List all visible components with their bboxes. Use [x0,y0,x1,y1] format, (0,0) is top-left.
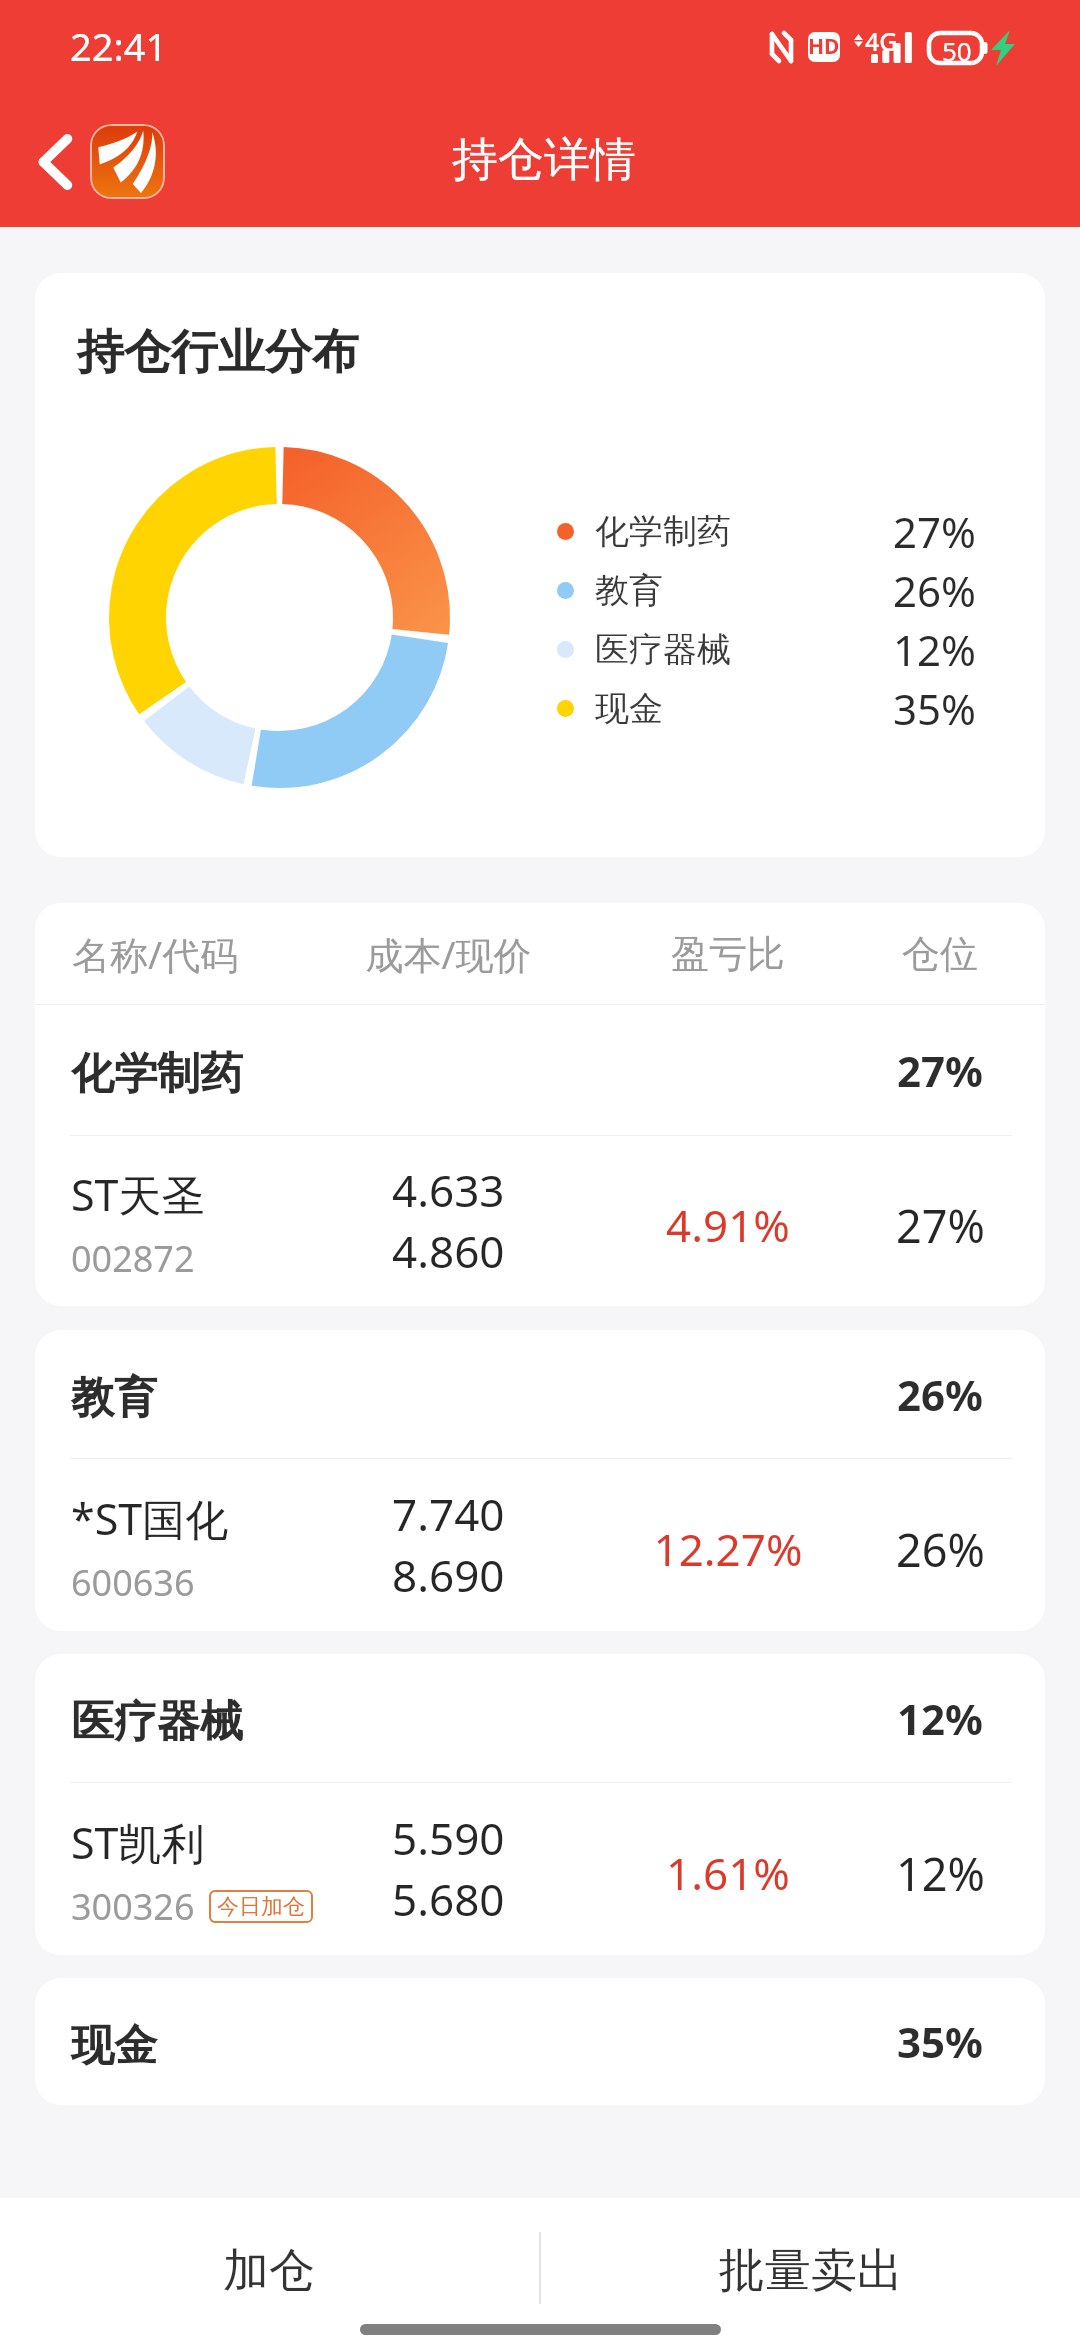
staticText: 今日加仓 [217,1893,305,1921]
staticText: 仓位 [902,930,978,978]
button[interactable]: *ST国化 [35,1459,1045,1631]
staticText: 35% [893,680,976,737]
button[interactable]: 化学制药 [35,1005,1045,1135]
staticText: 现金 [71,2019,157,2073]
staticText: 4.633 [392,1160,505,1220]
button[interactable]: 医疗器械 [35,1654,1045,1782]
staticText: 持仓行业分布 [77,323,359,382]
staticText: 26% [893,562,976,619]
staticText: 成本/现价 [365,928,532,980]
button[interactable]: 教育 [35,1330,1045,1458]
staticText: 7.740 [392,1484,505,1544]
staticText: 27% [896,1195,985,1256]
button[interactable]: ST凯利 [35,1783,1045,1955]
staticText: 22:41 [70,20,168,72]
staticText: 4G [865,24,898,58]
staticText: ST天圣 [71,1165,205,1224]
button[interactable]: ST天圣 [35,1136,1045,1306]
staticText: ST凯利 [71,1813,205,1872]
staticText: 名称/代码 [72,928,239,980]
staticText: *ST国化 [71,1489,229,1548]
staticText: HD [808,32,840,61]
staticText: 医疗器械 [595,628,731,671]
staticText: 600636 [71,1558,195,1607]
button[interactable]: 批量卖出 [540,2198,1080,2311]
button[interactable]: 现金 [35,1978,1045,2105]
staticText: 医疗器械 [71,1695,243,1749]
staticText: 8.690 [392,1545,505,1605]
button[interactable]: 返回 [23,110,181,213]
staticText: 27% [893,503,976,560]
staticText: 化学制药 [71,1047,243,1101]
staticText: 盈亏比 [671,930,785,978]
staticText: 5.590 [392,1808,505,1868]
staticText: 化学制药 [595,510,731,553]
staticText: 批量卖出 [719,2242,903,2300]
staticText: 35% [897,2013,983,2070]
staticText: 5.680 [392,1869,505,1929]
staticText: 12% [897,1690,983,1747]
staticText: 300326 [71,1882,195,1931]
button[interactable]: 加仓 [0,2198,540,2311]
staticText: 持仓详情 [452,131,636,189]
staticText: 4.860 [392,1221,505,1281]
staticText: 26% [897,1366,983,1423]
staticText: 002872 [71,1234,195,1283]
staticText: 加仓 [223,2242,315,2300]
staticText: 1.61% [666,1843,790,1903]
staticText: 教育 [71,1371,157,1425]
staticText: 教育 [595,569,663,612]
staticText: 26% [896,1519,985,1580]
staticText: 12.27% [653,1519,803,1579]
staticText: 27% [897,1042,983,1099]
staticText: 12% [896,1843,985,1904]
staticText: 50 [942,33,972,68]
staticText: 现金 [595,687,663,730]
staticText: 4.91% [666,1195,790,1255]
staticText: 12% [893,621,976,678]
